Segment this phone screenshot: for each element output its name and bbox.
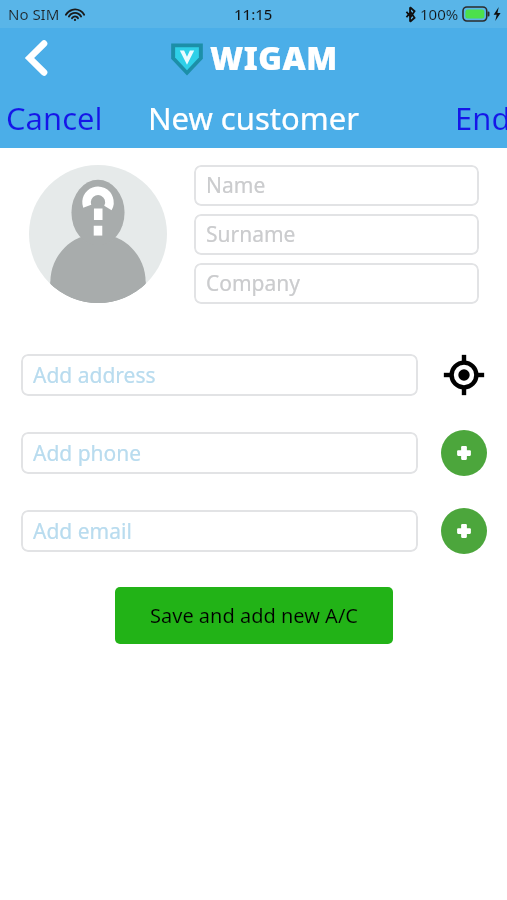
staticText: Add phone — [33, 439, 142, 468]
staticText: No SIM — [8, 4, 60, 24]
button[interactable]: End — [451, 91, 507, 145]
staticText: New customer — [148, 97, 359, 139]
button[interactable]: Company — [194, 263, 479, 304]
button[interactable]: Add Add phone — [438, 427, 490, 479]
staticText: Add email — [33, 517, 132, 546]
staticText: 11:15 — [234, 4, 273, 24]
button[interactable]: Add email — [21, 510, 418, 552]
button[interactable]: Name — [194, 165, 479, 206]
button[interactable]: Save and add new A/C system — [115, 587, 393, 644]
staticText: Name — [206, 171, 266, 200]
button[interactable]: Use current location — [438, 349, 490, 401]
button[interactable]: Add phone — [21, 432, 418, 474]
staticText: Surname — [206, 220, 296, 249]
staticText: Company — [206, 269, 300, 298]
button[interactable]: Back — [14, 35, 60, 81]
button[interactable]: Change photo — [29, 165, 167, 303]
button[interactable]: Cancel — [0, 91, 113, 145]
staticText: Cancel — [6, 97, 103, 139]
staticText: WIGAM — [210, 36, 338, 80]
staticText: Add address — [33, 361, 156, 390]
button[interactable]: Surname — [194, 214, 479, 255]
button[interactable]: Add Add email — [438, 505, 490, 557]
button[interactable]: Add address — [21, 354, 418, 396]
staticText: 100% — [420, 4, 459, 24]
staticText: End — [455, 97, 507, 139]
staticText: Save and add new A/C system — [115, 602, 393, 629]
